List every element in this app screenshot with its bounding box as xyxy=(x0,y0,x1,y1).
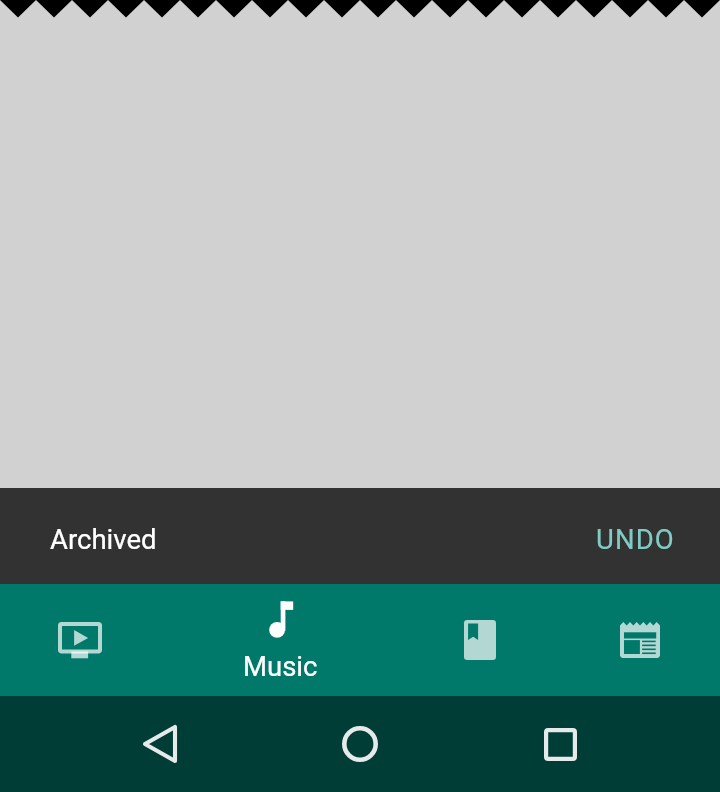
staticText: Archived xyxy=(50,523,157,555)
button[interactable]: Books xyxy=(400,584,560,696)
button[interactable]: Back xyxy=(60,696,260,792)
button[interactable]: Recent apps xyxy=(460,696,660,792)
button[interactable]: Movies xyxy=(0,584,160,696)
button[interactable]: Music xyxy=(160,584,400,696)
staticText: Music xyxy=(243,650,318,682)
button[interactable]: Archived xyxy=(0,488,720,584)
button[interactable]: News xyxy=(560,584,720,696)
button[interactable]: Home xyxy=(260,696,460,792)
staticText: UNDO xyxy=(596,523,675,555)
button[interactable]: UNDO xyxy=(572,506,699,566)
